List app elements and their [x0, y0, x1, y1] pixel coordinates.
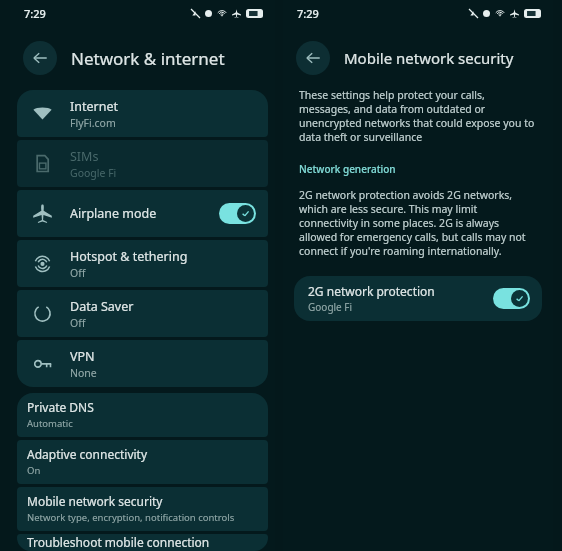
- staticText: VPN: [70, 348, 95, 365]
- staticText: None: [70, 366, 97, 380]
- staticText: 7:29: [297, 6, 319, 21]
- button[interactable]: SIMs: [17, 140, 268, 187]
- staticText: Adaptive connectivity: [27, 446, 148, 462]
- button[interactable]: Back: [23, 41, 57, 75]
- staticText: Network type, encryption, notification c…: [27, 511, 235, 524]
- staticText: Automatic: [27, 417, 73, 430]
- staticText: 2G network protection avoids 2G networks…: [299, 188, 537, 258]
- staticText: Off: [70, 266, 86, 280]
- staticText: Mobile network security: [344, 48, 514, 68]
- staticText: These settings help protect your calls, …: [299, 88, 537, 144]
- staticText: Network & internet: [71, 47, 225, 70]
- staticText: Network generation: [299, 162, 396, 176]
- button[interactable]: Troubleshoot mobile connection: [17, 534, 268, 551]
- button[interactable]: Mobile network security: [17, 487, 268, 531]
- staticText: Private DNS: [27, 399, 94, 415]
- staticText: Google Fi: [308, 300, 353, 314]
- staticText: Internet: [70, 98, 118, 115]
- staticText: Google Fi: [70, 166, 117, 180]
- button[interactable]: Airplane mode: [17, 190, 268, 237]
- staticText: 7:29: [24, 6, 46, 21]
- button[interactable]: Toggle: [493, 288, 530, 309]
- button[interactable]: Internet: [17, 90, 268, 137]
- staticText: FlyFi.com: [70, 116, 116, 130]
- staticText: Mobile network security: [27, 493, 163, 509]
- button[interactable]: 2G network protection: [294, 276, 542, 321]
- button[interactable]: Back: [296, 41, 330, 75]
- button[interactable]: VPN: [17, 340, 268, 387]
- staticText: Off: [70, 316, 86, 330]
- staticText: Data Saver: [70, 298, 134, 315]
- button[interactable]: Toggle: [219, 203, 256, 224]
- button[interactable]: Hotspot & tethering: [17, 240, 268, 287]
- button[interactable]: Private DNS: [17, 393, 268, 437]
- staticText: Airplane mode: [70, 205, 219, 222]
- staticText: Hotspot & tethering: [70, 248, 188, 265]
- staticText: 2G network protection: [308, 283, 435, 299]
- button[interactable]: Data Saver: [17, 290, 268, 337]
- staticText: SIMs: [70, 148, 99, 165]
- button[interactable]: Adaptive connectivity: [17, 440, 268, 484]
- staticText: On: [27, 464, 41, 477]
- staticText: Troubleshoot mobile connection: [27, 534, 210, 550]
